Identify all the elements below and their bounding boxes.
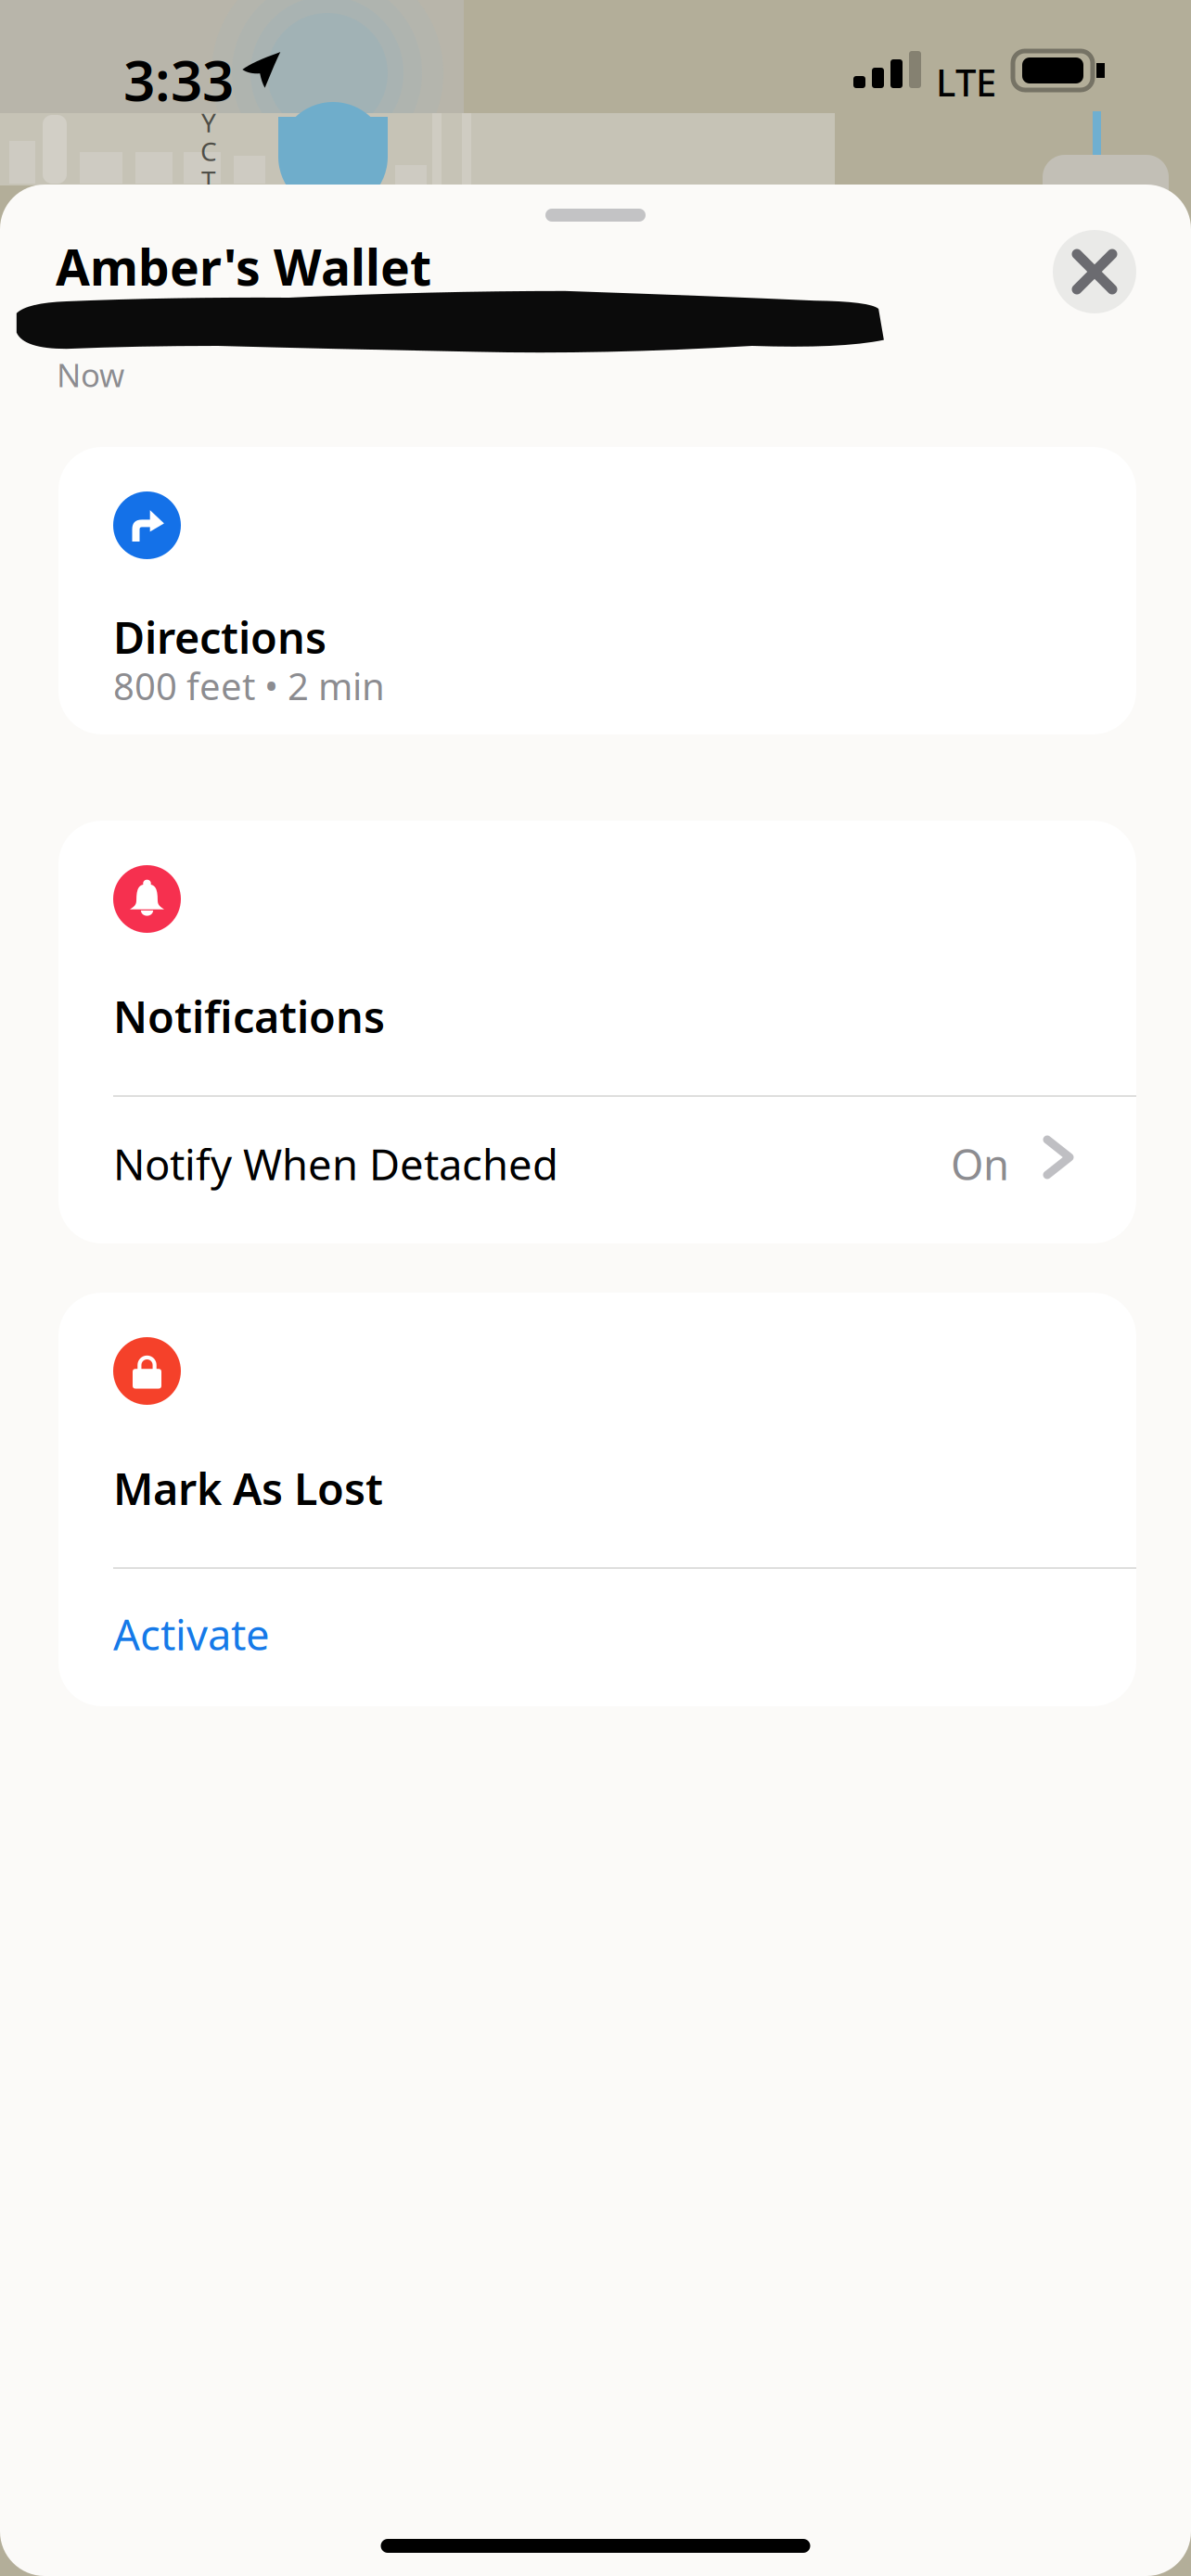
staticText: C: [200, 134, 217, 168]
staticText: Directions: [113, 608, 327, 666]
button[interactable]: Close: [1053, 230, 1136, 313]
staticText: 3:33: [123, 43, 234, 117]
button[interactable]: Activate: [58, 1569, 1136, 1706]
button[interactable]: Notify When Detached: [58, 1097, 1136, 1243]
staticText: Mark As Lost: [113, 1460, 383, 1517]
staticText: Notify When Detached: [113, 1136, 558, 1192]
staticText: 800 feet • 2 min: [113, 661, 385, 710]
staticText: T: [201, 163, 216, 197]
staticText: Y: [201, 105, 216, 139]
staticText: Amber's Wallet: [56, 234, 431, 299]
staticText: Activate: [113, 1606, 270, 1662]
button[interactable]: Directions: [58, 447, 1136, 734]
staticText: Now: [57, 353, 124, 396]
staticText: LTE: [936, 57, 996, 107]
staticText: On: [951, 1136, 1009, 1192]
staticText: Notifications: [113, 988, 385, 1045]
